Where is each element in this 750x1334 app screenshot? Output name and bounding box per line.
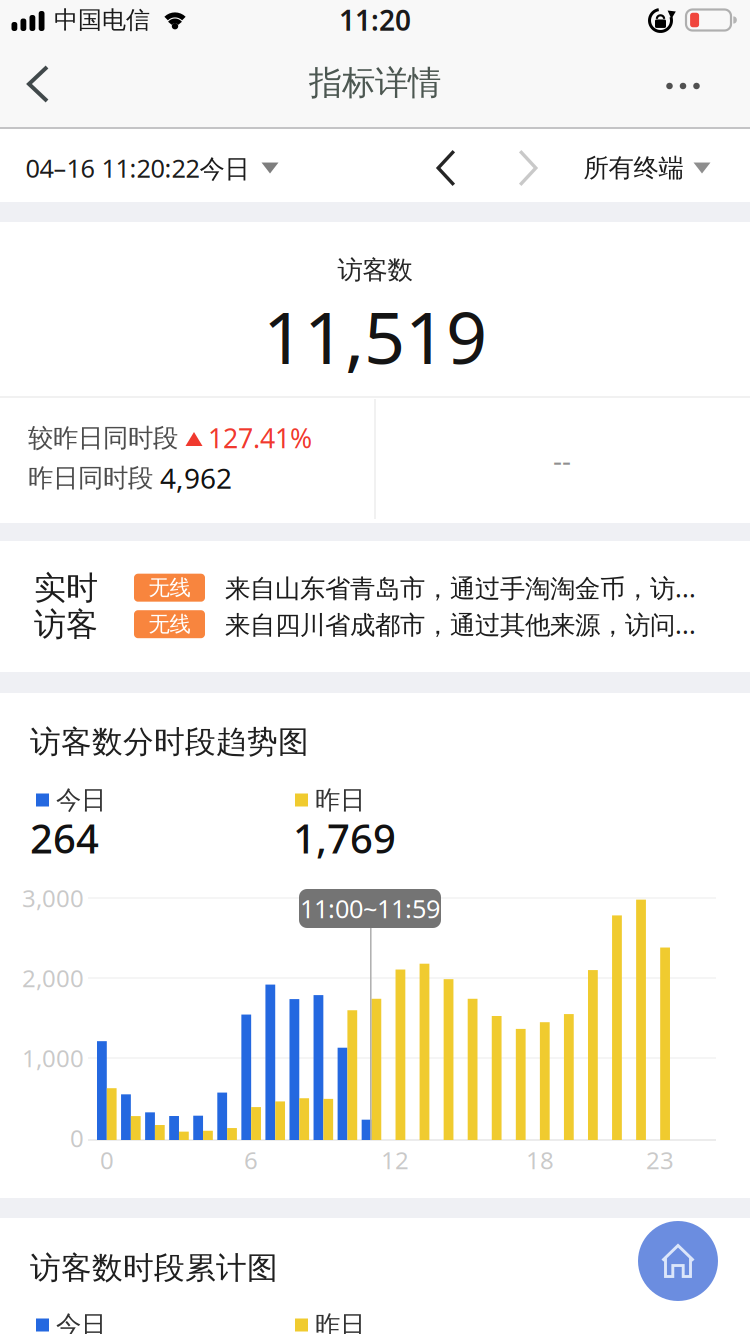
staticText: 4,962 [160,459,232,497]
button[interactable]: 所有终端 [583,152,710,183]
staticText: 11,519 [263,288,487,384]
button[interactable]: 返回 [10,54,66,114]
staticText: 11:00~11:59 [300,892,440,925]
staticText: 1,000 [22,1042,84,1074]
staticText: 今日 [56,1309,106,1334]
staticText: 访客数分时段趋势图 [30,723,309,761]
staticText: 18 [526,1144,554,1176]
staticText: 所有终端 [583,152,683,183]
staticText: 3,000 [22,882,84,914]
staticText: 0 [70,1122,84,1154]
staticText: 264 [30,811,99,864]
staticText: 实时 [34,568,98,608]
staticText: 2,000 [22,962,84,994]
staticText: 来自山东省青岛市，通过手淘淘金币，访... [225,571,696,604]
staticText: 127.41% [208,420,312,456]
staticText: -- [553,441,571,479]
staticText: 访客 [34,605,98,644]
staticText: 中国电信 [54,5,150,35]
staticText: 访客数时段累计图 [30,1249,278,1287]
staticText: 23 [646,1144,674,1176]
button[interactable]: 下一个指标 [504,140,552,196]
button[interactable]: 返回首页 [638,1221,718,1301]
staticText: 昨日同时段 [28,462,153,493]
button[interactable]: 04–16 11:20:22今日 [25,151,278,185]
staticText: 0 [100,1144,114,1176]
staticText: 访客数 [337,254,412,285]
staticText: 较昨日同时段 [28,422,178,453]
staticText: 1,769 [293,811,396,864]
staticText: 12 [381,1144,409,1176]
staticText: 无线 [148,575,190,601]
button[interactable]: 更多 [651,64,715,108]
staticText: 无线 [148,611,190,637]
staticText: 昨日 [315,1309,365,1334]
button[interactable]: 上一个指标 [422,140,470,196]
staticText: 04–16 11:20:22今日 [25,151,249,185]
staticText: 指标详情 [309,62,441,103]
staticText: 11:20 [339,1,411,39]
staticText: 昨日 [315,784,365,815]
staticText: 来自四川省成都市，通过其他来源，访问... [225,607,696,641]
staticText: 6 [244,1144,258,1176]
staticText: 今日 [56,784,106,815]
